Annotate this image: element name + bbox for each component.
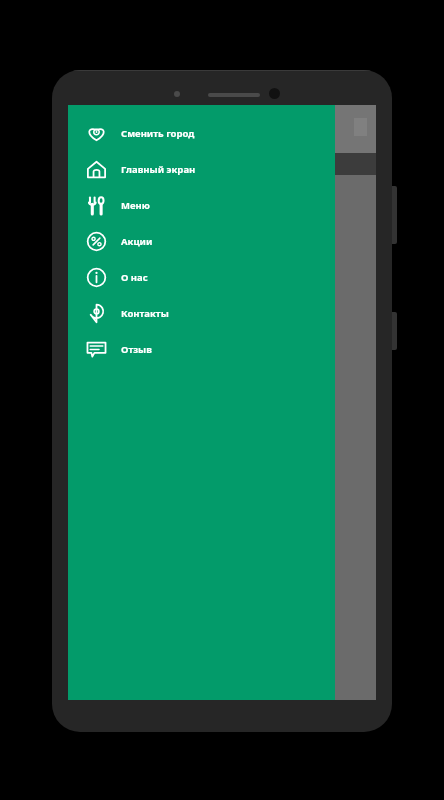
button[interactable]: Feedback (68, 331, 335, 367)
button[interactable]: Home screen (68, 151, 335, 187)
other: Feedback (86, 339, 107, 360)
button[interactable]: Change city (68, 115, 335, 151)
other: Menu (86, 195, 107, 216)
other: Change city (86, 123, 107, 144)
button[interactable]: Contacts (68, 295, 335, 331)
button[interactable]: About us (68, 259, 335, 295)
other: Contacts (86, 303, 107, 324)
other: Promotions (86, 231, 107, 252)
staticText: Меню (121, 199, 150, 212)
staticText: Акции (121, 235, 153, 248)
staticText: Контакты (121, 307, 169, 320)
button[interactable]: Promotions (68, 223, 335, 259)
staticText: О нас (121, 271, 148, 284)
staticText: Сменить город (121, 127, 195, 140)
staticText: Отзыв (121, 343, 152, 356)
staticText: Главный экран (121, 163, 196, 176)
button[interactable]: Menu (68, 187, 335, 223)
other: Home screen (86, 159, 107, 180)
other: About us (86, 267, 107, 288)
